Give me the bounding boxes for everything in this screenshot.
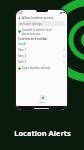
staticText: Location is used to send bbox=[22, 28, 52, 32]
button[interactable]: Item 3 bbox=[16, 59, 67, 65]
staticText: 9:41 bbox=[18, 11, 24, 15]
staticText: Controls and toolbar bbox=[18, 37, 48, 41]
staticText: Open location settings bbox=[22, 66, 51, 70]
button[interactable]: Search settings bbox=[18, 21, 65, 26]
button[interactable]: Open location settings bbox=[16, 65, 67, 71]
button[interactable]: Item 1 bbox=[16, 47, 67, 53]
button[interactable]: Back bbox=[18, 17, 21, 20]
staticText: Search settings bbox=[23, 22, 42, 26]
button[interactable]: Location is used to send bbox=[16, 27, 67, 36]
staticText: Alerts bbox=[39, 101, 45, 104]
staticText: Item 3 bbox=[18, 60, 26, 64]
staticText: alerts near you bbox=[22, 32, 41, 36]
button[interactable]: See all bbox=[18, 42, 26, 46]
staticText: Allow location access bbox=[22, 16, 54, 20]
staticText: See all bbox=[18, 42, 26, 46]
button[interactable]: Item 2 bbox=[16, 53, 67, 59]
staticText: Item 1 bbox=[18, 48, 26, 52]
staticText: Item 2 bbox=[18, 54, 26, 58]
staticText: Location Alerts bbox=[14, 128, 71, 138]
